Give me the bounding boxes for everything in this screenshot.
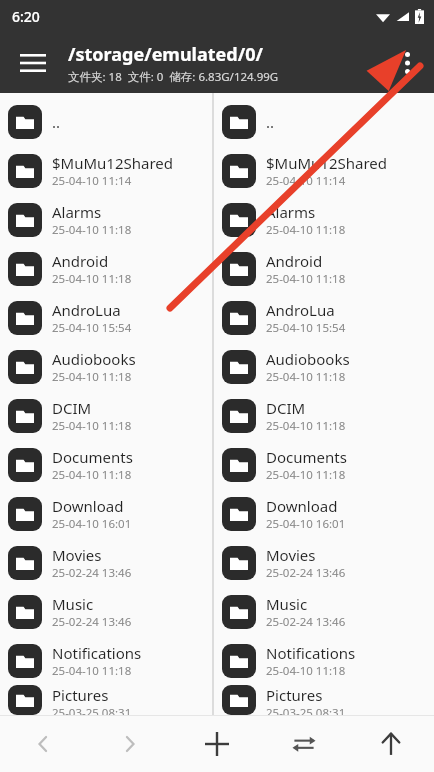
staticText: 25-04-10 15:54 xyxy=(52,320,132,336)
button[interactable]: More options xyxy=(388,44,426,82)
staticText: 25-04-10 11:14 xyxy=(52,173,132,189)
button[interactable]: .. xyxy=(0,97,212,146)
staticText: Music xyxy=(266,594,308,614)
staticText: Android xyxy=(52,251,109,271)
staticText: 文件夹: 18 文件: 0 储存: 6.83G/124.99G xyxy=(68,69,279,85)
staticText: AndroLua xyxy=(52,300,121,320)
button[interactable]: Up xyxy=(347,716,434,772)
staticText: 25-04-10 11:18 xyxy=(266,222,346,238)
staticText: 25-04-10 11:18 xyxy=(52,271,132,287)
staticText: Pictures xyxy=(52,685,109,705)
button[interactable]: Movies xyxy=(0,538,212,587)
button[interactable]: $MuMu12Shared xyxy=(0,146,212,195)
staticText: .. xyxy=(266,112,275,132)
staticText: 25-02-24 13:46 xyxy=(266,614,346,630)
staticText: 25-04-10 16:01 xyxy=(52,516,132,532)
staticText: Audiobooks xyxy=(52,349,136,369)
staticText: 25-04-10 15:54 xyxy=(266,320,346,336)
button[interactable]: Documents xyxy=(0,440,212,489)
button[interactable]: Swap panes xyxy=(260,716,347,772)
staticText: Notifications xyxy=(52,643,142,663)
staticText: 25-04-10 11:14 xyxy=(266,173,346,189)
staticText: 25-03-25 08:31 xyxy=(266,705,346,715)
button[interactable]: Menu xyxy=(14,44,52,82)
staticText: /storage/emulated/0/ xyxy=(68,42,263,67)
staticText: Download xyxy=(52,496,124,516)
staticText: 25-04-10 11:18 xyxy=(52,467,132,483)
staticText: 25-04-10 11:18 xyxy=(52,369,132,385)
staticText: Pictures xyxy=(266,685,323,705)
staticText: 25-02-24 13:46 xyxy=(266,565,346,581)
button[interactable]: DCIM xyxy=(214,391,434,440)
button[interactable]: Download xyxy=(0,489,212,538)
staticText: Audiobooks xyxy=(266,349,350,369)
staticText: $MuMu12Shared xyxy=(52,153,173,173)
staticText: Documents xyxy=(266,447,347,467)
staticText: 6:20 xyxy=(12,7,40,26)
button[interactable]: AndroLua xyxy=(0,293,212,342)
staticText: 25-04-10 11:18 xyxy=(266,663,346,679)
staticText: Movies xyxy=(266,545,316,565)
staticText: Documents xyxy=(52,447,133,467)
staticText: 25-04-10 16:01 xyxy=(266,516,346,532)
button[interactable]: Alarms xyxy=(214,195,434,244)
staticText: Alarms xyxy=(266,202,316,222)
staticText: Alarms xyxy=(52,202,102,222)
staticText: Android xyxy=(266,251,323,271)
staticText: $MuMu12Shared xyxy=(266,153,387,173)
staticText: 25-04-10 11:18 xyxy=(52,663,132,679)
button[interactable]: Download xyxy=(214,489,434,538)
button[interactable]: Music xyxy=(0,587,212,636)
button[interactable]: Forward xyxy=(86,716,173,772)
button[interactable]: Movies xyxy=(214,538,434,587)
button[interactable]: Documents xyxy=(214,440,434,489)
staticText: 25-02-24 13:46 xyxy=(52,565,132,581)
button[interactable]: Android xyxy=(214,244,434,293)
staticText: 25-03-25 08:31 xyxy=(52,705,132,715)
button[interactable]: Pictures xyxy=(214,685,434,715)
staticText: Notifications xyxy=(266,643,356,663)
staticText: DCIM xyxy=(52,398,92,418)
staticText: 25-04-10 11:18 xyxy=(52,418,132,434)
staticText: 25-04-10 11:18 xyxy=(266,271,346,287)
staticText: 25-02-24 13:46 xyxy=(52,614,132,630)
button[interactable]: Pictures xyxy=(0,685,212,715)
staticText: 25-04-10 11:18 xyxy=(266,418,346,434)
button[interactable]: Audiobooks xyxy=(0,342,212,391)
staticText: Download xyxy=(266,496,338,516)
button[interactable]: Notifications xyxy=(214,636,434,685)
button[interactable]: Music xyxy=(214,587,434,636)
button[interactable]: Back xyxy=(0,716,86,772)
staticText: Music xyxy=(52,594,94,614)
staticText: 25-04-10 11:18 xyxy=(52,222,132,238)
button[interactable]: Android xyxy=(0,244,212,293)
staticText: 25-04-10 11:18 xyxy=(266,369,346,385)
button[interactable]: Audiobooks xyxy=(214,342,434,391)
button[interactable]: AndroLua xyxy=(214,293,434,342)
staticText: 25-04-10 11:18 xyxy=(266,467,346,483)
staticText: Movies xyxy=(52,545,102,565)
staticText: AndroLua xyxy=(266,300,335,320)
button[interactable]: Notifications xyxy=(0,636,212,685)
button[interactable]: Alarms xyxy=(0,195,212,244)
button[interactable]: $MuMu12Shared xyxy=(214,146,434,195)
button[interactable]: Add xyxy=(173,716,260,772)
staticText: .. xyxy=(52,112,61,132)
staticText: DCIM xyxy=(266,398,306,418)
button[interactable]: DCIM xyxy=(0,391,212,440)
button[interactable]: .. xyxy=(214,97,434,146)
